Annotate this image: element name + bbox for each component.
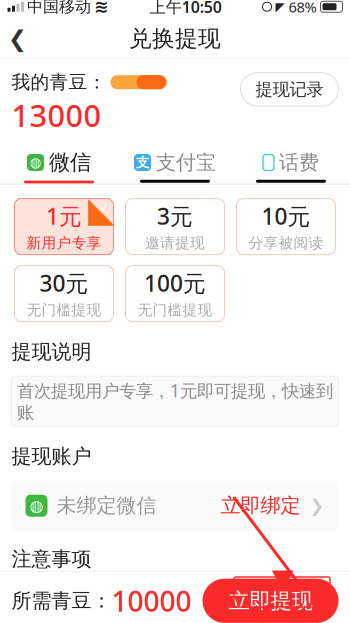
staticText: ◤ (275, 0, 284, 13)
staticText: 邀请提现 (145, 234, 205, 252)
button[interactable]: 返回 (0, 21, 39, 57)
staticText: 无门槛提现 (137, 301, 212, 319)
staticText: 无门槛提现 (26, 301, 101, 319)
button[interactable]: 立即提现 (202, 579, 338, 623)
staticText: ❮ (8, 26, 27, 52)
staticText: 未绑定微信 (56, 493, 156, 518)
button[interactable]: 1元 (14, 199, 113, 255)
staticText: ◣ (88, 190, 115, 229)
staticText: 所需青豆： (11, 588, 111, 613)
staticText: ❯ (309, 496, 324, 516)
staticText: 话费 (279, 150, 319, 175)
staticText: 上午10:50 (150, 0, 222, 17)
staticText: 中国移动 (27, 0, 91, 17)
button[interactable]: 10元 (236, 199, 335, 255)
staticText: ◍ (29, 155, 41, 170)
button[interactable]: 提现记录 (240, 73, 338, 106)
staticText: ▼ (272, 563, 294, 595)
staticText: 3元 (157, 201, 193, 231)
staticText: 提现账户 (11, 444, 91, 469)
staticText: 30元 (39, 268, 88, 298)
staticText: 兑换提现 (129, 25, 221, 53)
staticText: 100元 (144, 268, 206, 298)
button[interactable]: ◍ (0, 481, 350, 531)
button[interactable]: 话费 (233, 150, 349, 183)
staticText: ✓ (100, 200, 110, 214)
staticText: 1元 (46, 201, 82, 231)
button[interactable]: 30元 (14, 266, 113, 322)
staticText: 10000 (111, 582, 191, 619)
staticText: ≋ (94, 0, 109, 17)
staticText: 提现记录 (255, 79, 323, 100)
button[interactable]: 100元 (125, 266, 224, 322)
button[interactable]: ◍ (1, 149, 117, 184)
button[interactable]: 支 (117, 150, 233, 183)
button[interactable]: 3元 (125, 199, 224, 255)
staticText: 我的青豆： (11, 71, 106, 94)
staticText: 立即提现 (228, 588, 312, 614)
staticText: 微信 (49, 149, 91, 176)
staticText: 68% (288, 0, 316, 16)
staticText: 注意事项 (11, 547, 91, 571)
staticText: 10元 (261, 201, 310, 231)
staticText: 提现说明 (11, 340, 91, 364)
staticText: 首次提现用户专享，1元即可提现，快速到账 (17, 379, 333, 423)
staticText: 13000 (11, 95, 101, 135)
staticText: ◍ (29, 497, 43, 515)
staticText: 支付宝 (156, 150, 216, 175)
staticText: 支 (136, 154, 149, 171)
staticText: 新用户专享 (26, 234, 101, 252)
staticText: 立即绑定 (220, 493, 300, 518)
staticText: 分享被阅读 (248, 234, 323, 252)
